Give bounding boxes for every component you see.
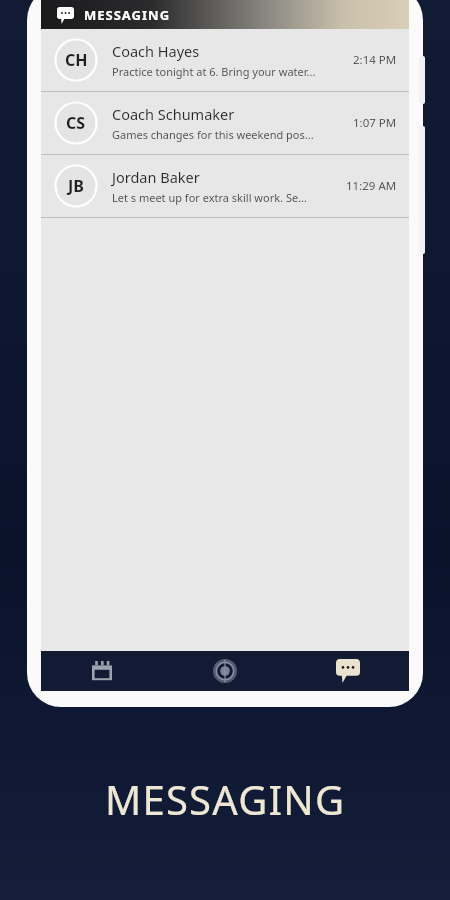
staticText: Coach Schumaker	[112, 104, 235, 124]
staticText: MESSAGING	[105, 772, 346, 826]
staticText: Let s meet up for extra skill work. Se..…	[112, 190, 307, 205]
button[interactable]: CS	[41, 92, 409, 154]
staticText: Jordan Baker	[112, 167, 200, 187]
button[interactable]: Messaging	[323, 651, 373, 691]
staticText: MESSAGING	[84, 6, 171, 24]
staticText: Coach Hayes	[112, 41, 200, 61]
button[interactable]: JB	[41, 155, 409, 217]
button[interactable]: MESSAGING	[41, 0, 409, 29]
staticText: Practice tonight at 6. Bring your water.…	[112, 64, 316, 79]
staticText: Games changes for this weekend pos...	[112, 127, 314, 142]
staticText: 1:07 PM	[353, 115, 397, 131]
staticText: CS	[66, 112, 86, 134]
staticText: JB	[68, 175, 84, 197]
staticText: CH	[65, 49, 88, 71]
button[interactable]: Team	[200, 651, 250, 691]
staticText: 2:14 PM	[353, 52, 397, 68]
button[interactable]: CH	[41, 29, 409, 91]
button[interactable]: Calendar	[77, 651, 127, 691]
staticText: 11:29 AM	[346, 178, 397, 194]
